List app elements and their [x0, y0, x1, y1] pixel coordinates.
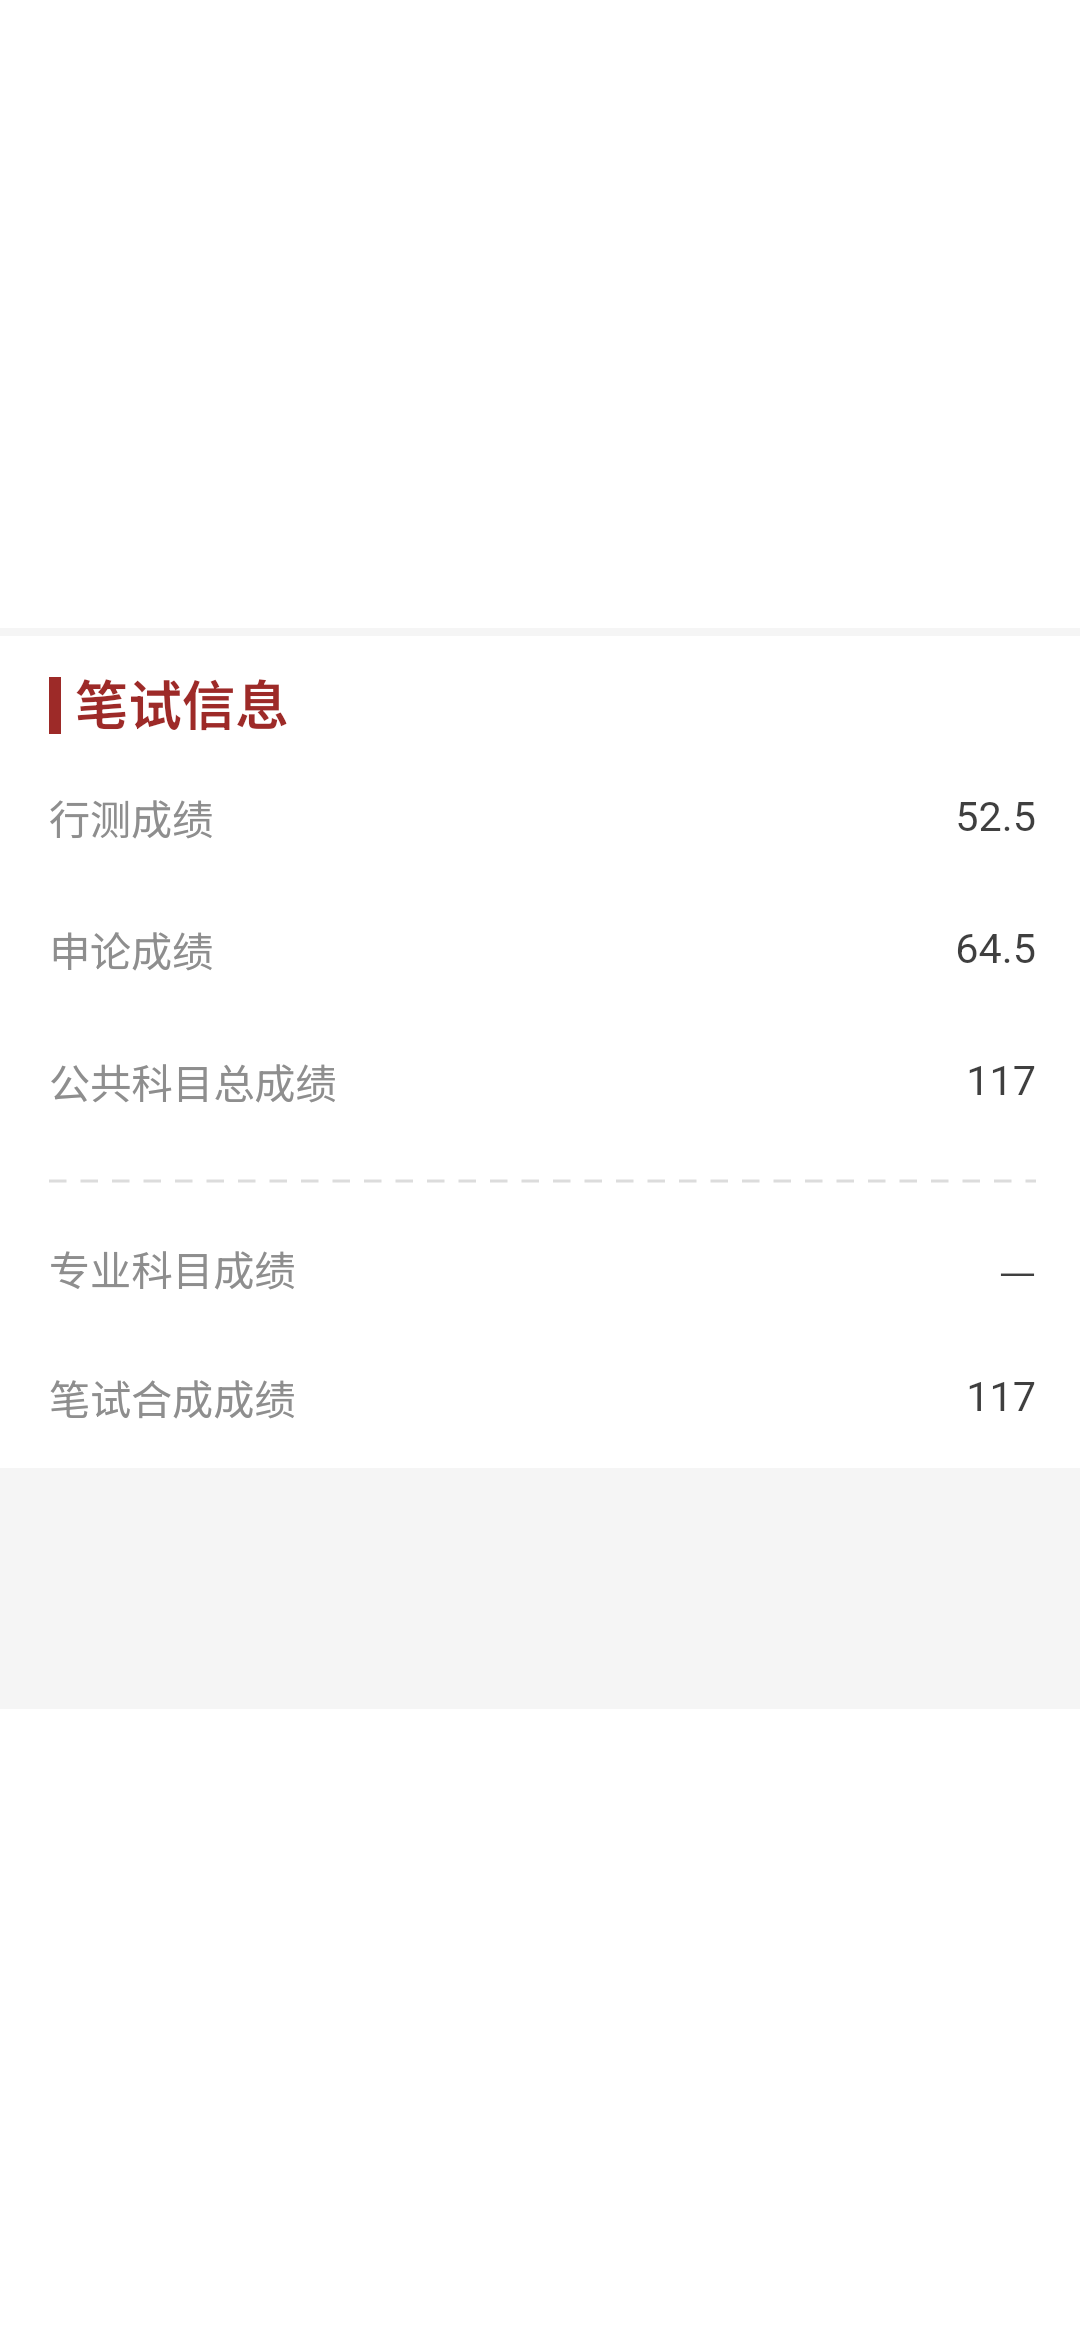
staticText: 专业科目成绩: [49, 1238, 296, 1298]
button[interactable]: 公共科目总成绩: [0, 1015, 1080, 1147]
staticText: 64.5: [955, 925, 1036, 974]
staticText: 52.5: [955, 793, 1036, 842]
button[interactable]: 申论成绩: [0, 883, 1080, 1015]
staticText: 117: [966, 1373, 1036, 1422]
button[interactable]: 专业科目成绩: [0, 1202, 1080, 1334]
staticText: —: [998, 1238, 1036, 1298]
staticText: 行测成绩: [49, 787, 214, 847]
staticText: 公共科目总成绩: [49, 1051, 337, 1111]
other: Divider: [49, 1171, 1036, 1191]
button[interactable]: 行测成绩: [0, 751, 1080, 883]
staticText: 117: [966, 1057, 1036, 1106]
staticText: 申论成绩: [49, 919, 214, 979]
button[interactable]: 笔试合成成绩: [0, 1331, 1080, 1463]
staticText: 笔试合成成绩: [49, 1367, 296, 1427]
staticText: 笔试信息: [75, 663, 289, 740]
